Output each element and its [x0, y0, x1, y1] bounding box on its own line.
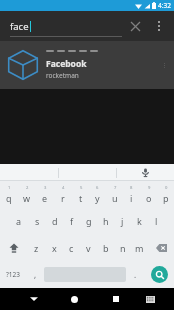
button[interactable]: Search [144, 261, 174, 288]
staticText: 7 [114, 185, 117, 191]
staticText: 4:32 [158, 1, 171, 10]
button[interactable]: Recents [101, 288, 130, 310]
button[interactable]: g [80, 207, 97, 234]
staticText: r [61, 192, 65, 204]
button[interactable]: More options [148, 15, 170, 37]
staticText: 9 [148, 185, 151, 191]
button[interactable]: c [63, 234, 80, 261]
button[interactable]: 5 [72, 181, 89, 207]
button[interactable]: a [10, 207, 28, 234]
staticText: u [112, 192, 118, 204]
staticText: g [86, 215, 92, 227]
staticText: l [155, 215, 158, 227]
staticText: k [137, 215, 142, 227]
button[interactable]: 6 [89, 181, 106, 207]
button[interactable]: k [131, 207, 148, 234]
button[interactable]: Home [60, 288, 89, 310]
staticText: 2 [26, 185, 29, 191]
button[interactable]: h [97, 207, 114, 234]
button[interactable]: j [114, 207, 131, 234]
staticText: m [135, 242, 144, 254]
staticText: 4 [62, 185, 65, 191]
button[interactable]: ?123 [0, 261, 26, 288]
staticText: 8 [130, 185, 133, 191]
staticText: Facebook [46, 58, 87, 70]
staticText: z [34, 242, 39, 254]
staticText: 5 [80, 185, 83, 191]
button[interactable]: v [80, 234, 97, 261]
staticText: c [69, 242, 74, 254]
staticText: e [42, 192, 48, 204]
staticText: . [134, 269, 137, 280]
staticText: ?123 [6, 270, 20, 279]
button[interactable]: m [131, 234, 148, 261]
button[interactable]: Facebook [0, 41, 174, 89]
staticText: a [16, 215, 22, 227]
button[interactable]: , [26, 261, 44, 288]
button[interactable]: x [45, 234, 63, 261]
staticText: y [95, 192, 100, 204]
button[interactable]: 4 [54, 181, 72, 207]
button[interactable]: z [27, 234, 45, 261]
staticText: b [103, 242, 109, 254]
button[interactable]: 9 [140, 181, 157, 207]
staticText: f [70, 215, 74, 227]
button[interactable]: 7 [106, 181, 123, 207]
staticText: face [10, 20, 29, 33]
button[interactable]: Switch keyboard [136, 288, 165, 310]
staticText: n [120, 242, 126, 254]
staticText: s [35, 215, 40, 227]
staticText: j [121, 215, 124, 227]
staticText: q [6, 192, 12, 204]
staticText: t [79, 192, 83, 204]
staticText: w [23, 192, 31, 204]
staticText: p [163, 192, 169, 204]
staticText: rocketman [46, 71, 79, 80]
staticText: i [130, 192, 133, 204]
staticText: 6 [96, 185, 99, 191]
button[interactable]: Hide keyboard [19, 288, 48, 310]
button[interactable]: 3 [36, 181, 54, 207]
button[interactable]: Clear search [122, 13, 148, 39]
staticText: v [86, 242, 91, 254]
button[interactable]: 0 [157, 181, 174, 207]
staticText: , [34, 269, 37, 280]
button[interactable]: b [97, 234, 114, 261]
button[interactable]: d [46, 207, 63, 234]
button[interactable]: 8 [123, 181, 140, 207]
staticText: 3 [44, 185, 47, 191]
button[interactable]: 1 [0, 181, 18, 207]
staticText: x [52, 242, 57, 254]
staticText: 0 [165, 185, 168, 191]
staticText: h [103, 215, 109, 227]
button[interactable]: Backspace [148, 234, 174, 261]
staticText: d [52, 215, 58, 227]
staticText: o [146, 192, 152, 204]
button[interactable]: . [126, 261, 144, 288]
button[interactable]: n [114, 234, 131, 261]
button[interactable]: Voice input [117, 164, 174, 181]
button[interactable]: Shift [0, 234, 27, 261]
button[interactable]: s [28, 207, 46, 234]
staticText: 1 [8, 185, 11, 191]
button[interactable]: l [148, 207, 165, 234]
button[interactable]: f [63, 207, 80, 234]
button[interactable]: 2 [18, 181, 36, 207]
